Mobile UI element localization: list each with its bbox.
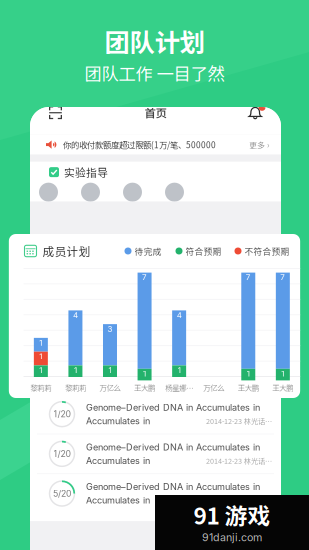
staticText: 1 (281, 369, 284, 378)
staticText: 1 (247, 369, 250, 378)
staticText: 1/20 (53, 409, 70, 419)
staticText: 团队计划 (104, 23, 204, 59)
staticText: 2014-12-23 林光话… (206, 495, 272, 505)
staticText: 未完成 (174, 374, 198, 386)
staticText: 不符合预期 (244, 245, 289, 257)
staticText: 万亿么 (203, 382, 224, 393)
staticText: 1 (39, 365, 42, 375)
staticText: 成员计划 (42, 243, 90, 259)
staticText: 王大鹏 (272, 382, 293, 393)
staticText: 7 (280, 273, 285, 282)
staticText: 4 (177, 310, 182, 320)
staticText: 实验指导 (64, 164, 108, 180)
staticText: 王大鹏 (134, 382, 155, 393)
button[interactable]: 5/20 (30, 474, 281, 513)
button[interactable]: Notifications (242, 100, 268, 125)
staticText: 7 (142, 273, 147, 282)
staticText: 7 (246, 273, 251, 282)
staticText: 2014-12-23 林光话… (206, 416, 272, 426)
staticText: 更多 › (249, 139, 269, 150)
staticText: Genome–Derived DNA in Accumulates in (86, 481, 260, 492)
staticText: 杨星娜… (165, 382, 193, 393)
staticText: 1/20 (53, 449, 70, 459)
staticText: 首页 (144, 104, 166, 121)
staticText: 王大鹏 (238, 382, 259, 393)
button[interactable]: 1/20 (30, 395, 281, 434)
staticText: 黎莉莉 (65, 382, 86, 393)
staticText: 1 (39, 338, 42, 348)
staticText: Accumulates in (86, 455, 150, 466)
staticText: 已完成 (242, 374, 266, 386)
staticText: Accumulates in (86, 495, 150, 506)
staticText: 2014-12-23 林光话… (206, 455, 272, 466)
button[interactable]: 你的收付款额度超过限额(1万/笔、500000 (30, 135, 281, 155)
staticText: Accumulates in (86, 415, 150, 426)
button[interactable]: 1/20 (30, 434, 281, 473)
staticText: 1 (39, 352, 42, 361)
staticText: 5/20 (53, 488, 71, 499)
staticText: 1 (108, 365, 111, 375)
staticText: 4 (73, 310, 78, 320)
staticText: 黎莉莉 (30, 382, 51, 393)
staticText: 你的收付款额度超过限额(1万/笔、500000 (63, 139, 216, 151)
staticText: 1 (178, 365, 181, 375)
staticText: Genome–Derived DNA in Accumulates in (86, 442, 260, 453)
staticText: 待完成 (134, 245, 161, 257)
staticText: 91 游戏 (193, 498, 270, 531)
staticText: 团队工作 一目了然 (84, 60, 224, 86)
staticText: 1 (143, 369, 146, 378)
staticText: 符合预期 (185, 245, 221, 257)
staticText: 91danji.com (202, 531, 262, 544)
staticText: 课题进度 (61, 372, 105, 388)
staticText: 3 (107, 324, 112, 334)
staticText: 1 (74, 365, 77, 375)
staticText: Genome–Derived DNA in Accumulates in (86, 402, 260, 413)
button[interactable]: Scan (43, 100, 68, 125)
staticText: 万亿么 (99, 382, 120, 393)
